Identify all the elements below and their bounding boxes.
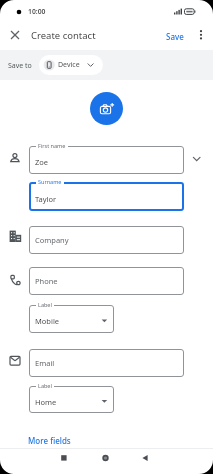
staticText: Zoe bbox=[35, 157, 49, 167]
staticText: Mobile bbox=[35, 316, 60, 326]
button[interactable]: Email bbox=[29, 349, 184, 377]
button[interactable]: Device bbox=[39, 55, 103, 75]
button[interactable]: Company bbox=[29, 226, 184, 254]
button[interactable]: More fields bbox=[28, 435, 71, 446]
button[interactable]: Phone bbox=[29, 267, 184, 295]
staticText: First name bbox=[38, 142, 66, 149]
staticText: Phone bbox=[35, 276, 58, 286]
button[interactable]: Home bbox=[29, 386, 114, 413]
button[interactable] bbox=[90, 92, 123, 125]
staticText: Create contact bbox=[31, 29, 96, 42]
staticText: Label bbox=[38, 382, 52, 389]
staticText: 10:00 bbox=[28, 7, 46, 16]
staticText: Label bbox=[38, 301, 52, 308]
staticText: Save bbox=[166, 31, 184, 42]
staticText: Save to bbox=[8, 61, 32, 71]
button[interactable] bbox=[8, 28, 22, 42]
button[interactable] bbox=[94, 449, 118, 467]
button[interactable]: Save bbox=[166, 31, 184, 42]
button[interactable] bbox=[196, 28, 206, 42]
staticText: Company bbox=[35, 235, 69, 245]
staticText: Surname bbox=[38, 178, 62, 185]
button[interactable]: Taylor bbox=[29, 182, 184, 211]
button[interactable]: Zoe bbox=[29, 146, 184, 174]
button[interactable]: Mobile bbox=[29, 305, 114, 333]
staticText: Device bbox=[58, 60, 80, 70]
staticText: Home bbox=[35, 397, 57, 407]
staticText: Email bbox=[35, 358, 55, 368]
staticText: Taylor bbox=[35, 194, 57, 204]
button[interactable] bbox=[52, 449, 76, 467]
button[interactable] bbox=[134, 449, 158, 467]
staticText: More fields bbox=[28, 435, 71, 446]
